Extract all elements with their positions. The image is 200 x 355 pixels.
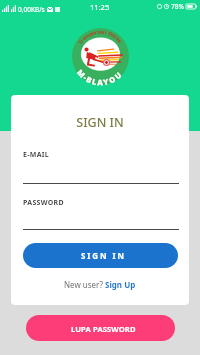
staticText: New user? (64, 279, 105, 290)
staticText: E-MAIL (23, 150, 50, 160)
button[interactable]: LUPA PASSWORD (26, 315, 175, 341)
staticText: SIGN IN (81, 250, 126, 261)
staticText: LUPA PASSWORD (71, 324, 136, 334)
staticText: 11:25 (90, 2, 110, 12)
button[interactable]: SIGN IN (23, 243, 178, 268)
staticText: SIGN IN (11, 114, 189, 131)
staticText: 78% (171, 2, 184, 11)
staticText: 0,00KB/s (18, 5, 45, 14)
staticText: PASSWORD (23, 198, 64, 208)
button[interactable]: Sign Up (105, 279, 136, 290)
